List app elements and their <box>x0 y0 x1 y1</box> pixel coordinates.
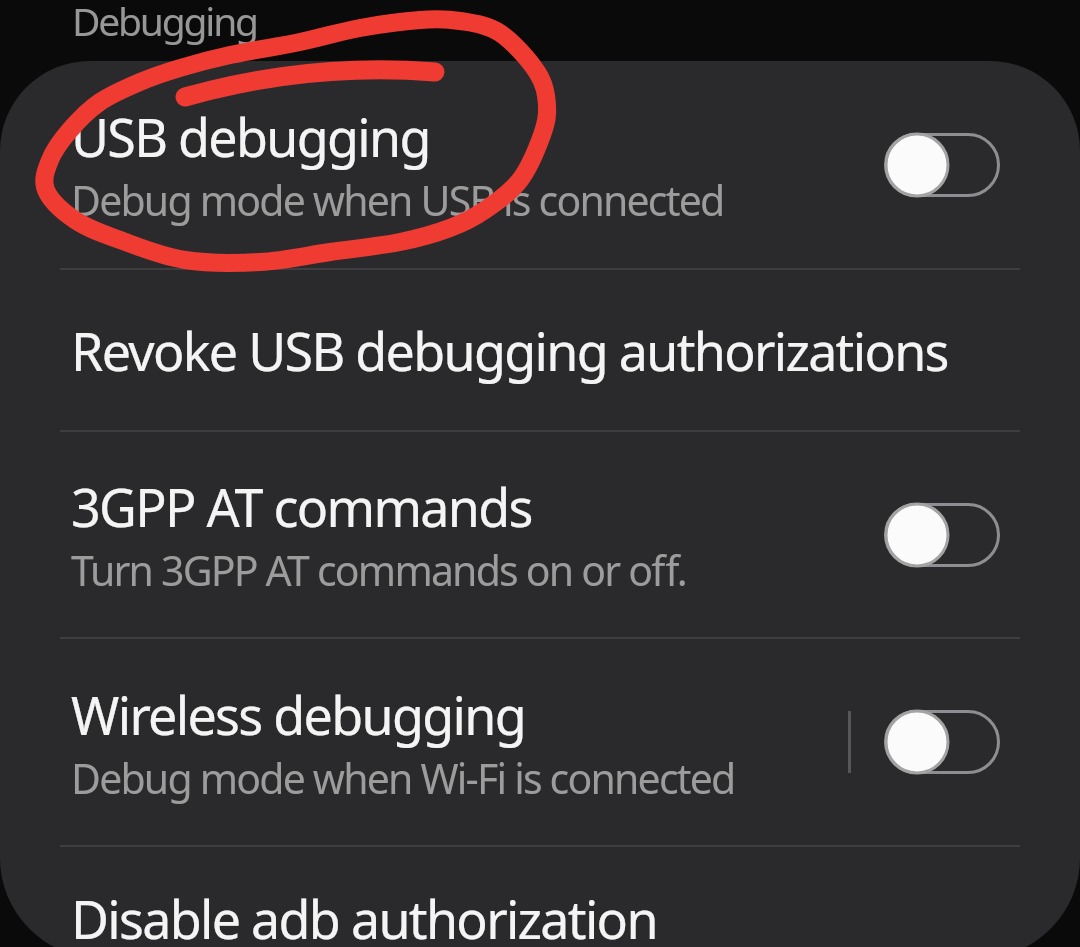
staticText: Debugging <box>72 0 257 47</box>
button[interactable]: Revoke USB debugging authorizations <box>0 270 1080 430</box>
staticText: Debug mode when Wi-Fi is connected <box>71 750 735 806</box>
button[interactable]: Disable adb authorization <box>0 879 1080 947</box>
button[interactable]: 3GPP AT commands <box>0 432 1080 637</box>
button[interactable]: Wireless debugging <box>0 639 1080 845</box>
staticText: Revoke USB debugging authorizations <box>71 315 948 386</box>
staticText: Debug mode when USB is connected <box>71 172 724 228</box>
staticText: 3GPP AT commands <box>71 471 532 542</box>
staticText: Wireless debugging <box>71 679 525 750</box>
staticText: Turn 3GPP AT commands on or off. <box>71 542 686 598</box>
button[interactable]: USB debugging <box>0 61 1080 268</box>
staticText: Disable adb authorization <box>71 883 657 947</box>
staticText: USB debugging <box>71 101 430 172</box>
